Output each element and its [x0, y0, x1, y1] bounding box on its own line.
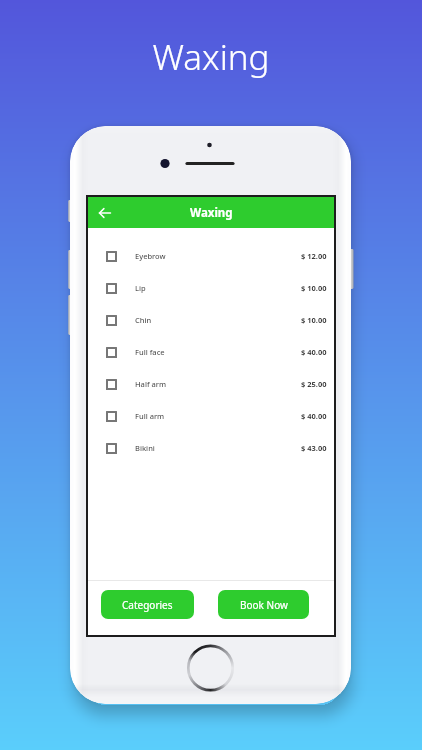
button[interactable]: Full face	[88, 336, 334, 368]
button[interactable]: Categories	[101, 590, 194, 619]
button[interactable]: Eyebrow	[88, 240, 334, 272]
staticText: $ 12.00	[301, 251, 327, 261]
staticText: Book Now	[240, 598, 288, 612]
button[interactable]: Half arm	[88, 368, 334, 400]
staticText: $ 10.00	[301, 315, 327, 325]
staticText: Waxing	[190, 205, 233, 221]
staticText: $ 25.00	[301, 379, 327, 389]
staticText: Chin	[135, 315, 152, 325]
staticText: $ 40.00	[301, 347, 327, 357]
staticText: Full face	[135, 347, 165, 357]
staticText: Bikini	[135, 443, 155, 453]
staticText: $ 10.00	[301, 283, 327, 293]
button[interactable]: Lip	[88, 272, 334, 304]
staticText: Lip	[135, 283, 146, 293]
button[interactable]: Bikini	[88, 432, 334, 464]
button[interactable]: Full arm	[88, 400, 334, 432]
staticText: Half arm	[135, 379, 167, 389]
button[interactable]: Book Now	[218, 590, 309, 619]
staticText: Categories	[122, 598, 173, 612]
staticText: Waxing	[0, 33, 422, 81]
staticText: $ 40.00	[301, 411, 327, 421]
staticText: $ 43.00	[301, 443, 327, 453]
button[interactable]: Chin	[88, 304, 334, 336]
button[interactable]: Back	[96, 203, 116, 223]
staticText: Full arm	[135, 411, 165, 421]
staticText: Eyebrow	[135, 251, 166, 261]
